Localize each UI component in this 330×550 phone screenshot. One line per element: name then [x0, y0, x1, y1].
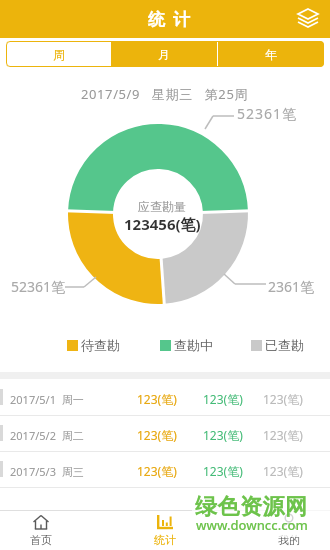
staticText: 待查勘	[81, 337, 120, 353]
button[interactable]: 月	[111, 41, 217, 67]
staticText: 123(笔)	[203, 391, 243, 407]
staticText: 周	[53, 47, 65, 62]
button[interactable]: 2017/5/3 周三	[0, 451, 330, 487]
button[interactable]: 首页	[20, 513, 62, 547]
button[interactable]: 2017/5/1 周一	[0, 379, 330, 415]
staticText: 123(笔)	[263, 391, 303, 407]
staticText: 52361笔	[237, 104, 298, 123]
staticText: 我的	[278, 533, 300, 547]
staticText: 2361笔	[268, 277, 315, 296]
staticText: 52361笔	[11, 277, 66, 296]
button[interactable]: 已查勘	[251, 337, 304, 353]
button[interactable]: 2017/5/2 周二	[0, 415, 330, 451]
button[interactable]: 我的	[268, 513, 310, 547]
staticText: 123(笔)	[263, 427, 303, 443]
staticText: 首页	[30, 533, 52, 547]
staticText: 123456(笔)	[124, 214, 201, 234]
staticText: 2017/5/2 周二	[10, 428, 84, 443]
button[interactable]: 统计	[144, 513, 186, 547]
staticText: 123(笔)	[203, 427, 243, 443]
staticText: 123(笔)	[137, 427, 177, 443]
staticText: 月	[158, 47, 170, 62]
button[interactable]	[296, 7, 320, 31]
staticText: 2017/5/3 周三	[10, 464, 84, 479]
staticText: 2017/5/9 星期三 第25周	[81, 85, 249, 103]
button[interactable]: 待查勘	[67, 337, 120, 353]
button[interactable]: 年	[218, 41, 324, 67]
staticText: 查勘中	[174, 337, 213, 353]
staticText: 应查勘量	[138, 199, 186, 214]
staticText: 统计	[144, 9, 194, 30]
staticText: 绿色资源网	[195, 493, 308, 521]
staticText: 123(笔)	[137, 463, 177, 479]
staticText: 123(笔)	[203, 463, 243, 479]
staticText: 123(笔)	[263, 463, 303, 479]
staticText: www.downcc.com	[196, 516, 308, 534]
button[interactable]: 周	[6, 41, 111, 67]
staticText: 已查勘	[265, 337, 304, 353]
staticText: 统计	[154, 533, 176, 547]
staticText: 123(笔)	[137, 391, 177, 407]
button[interactable]: 查勘中	[160, 337, 213, 353]
staticText: 年	[265, 47, 277, 62]
staticText: 2017/5/1 周一	[10, 392, 84, 407]
